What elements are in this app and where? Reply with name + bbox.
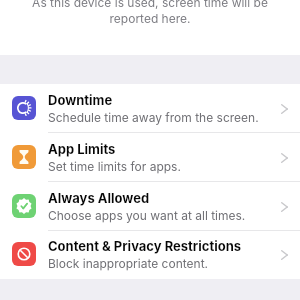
other: Content & Privacy Restrictions (281, 250, 288, 260)
staticText: Always Allowed (48, 190, 150, 206)
other: Always Allowed (281, 202, 288, 212)
staticText: Choose apps you want at all times. (48, 208, 246, 223)
staticText: Schedule time away from the screen. (48, 110, 259, 125)
button[interactable]: Content & Privacy Restrictions (0, 230, 300, 279)
button[interactable]: App Limits (0, 133, 300, 182)
button[interactable]: Downtime (0, 84, 300, 133)
staticText: Set time limits for apps. (48, 159, 181, 174)
staticText: Content & Privacy Restrictions (48, 238, 242, 254)
other: App Limits (281, 153, 288, 163)
other: Downtime (281, 104, 288, 114)
button[interactable]: Always Allowed (0, 182, 300, 231)
staticText: As this device is used, screen time will… (0, 0, 300, 26)
staticText: Block inappropriate content. (48, 256, 209, 271)
staticText: Downtime (48, 92, 113, 108)
staticText: App Limits (48, 141, 116, 157)
